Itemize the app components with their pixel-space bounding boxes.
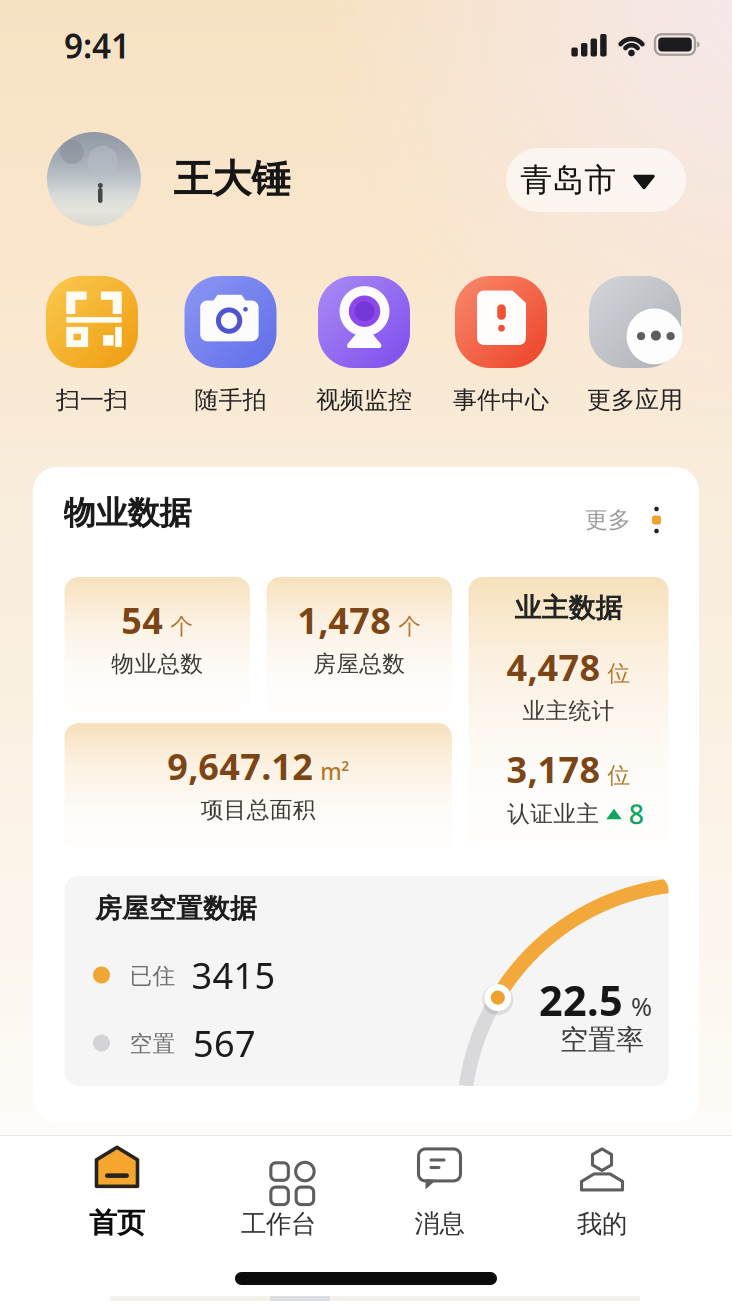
staticText: % xyxy=(631,989,652,1023)
staticText: 9,647.12 xyxy=(167,742,313,790)
staticText: 54 xyxy=(121,596,163,644)
button[interactable]: 首页 xyxy=(42,1144,192,1240)
staticText: 空置率 xyxy=(560,1023,644,1057)
button[interactable]: 视频监控 xyxy=(299,275,429,425)
staticText: 更多 xyxy=(585,506,631,534)
staticText: 1,478 xyxy=(297,596,391,644)
staticText: 我的 xyxy=(577,1208,627,1239)
staticText: 位 xyxy=(607,659,630,687)
staticText: 已住 xyxy=(129,962,175,990)
staticText: 随手拍 xyxy=(194,385,266,415)
button[interactable]: 我的 xyxy=(527,1146,677,1239)
button[interactable]: 工作台 xyxy=(203,1146,353,1239)
staticText: 扫一扫 xyxy=(56,385,128,415)
staticText: 个 xyxy=(170,612,193,640)
staticText: 消息 xyxy=(414,1208,464,1239)
staticText: 王大锤 xyxy=(173,155,290,203)
staticText: 空置 xyxy=(129,1030,175,1058)
staticText: 业主统计 xyxy=(522,697,614,725)
staticText: 房屋空置数据 xyxy=(95,892,257,925)
staticText: 567 xyxy=(193,1019,256,1067)
staticText: 4,478 xyxy=(506,643,600,691)
staticText: 青岛市 xyxy=(520,160,616,200)
staticText: 工作台 xyxy=(241,1208,316,1239)
staticText: 3415 xyxy=(191,951,275,999)
staticText: 物业总数 xyxy=(111,650,203,678)
button[interactable]: 消息 xyxy=(364,1146,514,1239)
staticText: 首页 xyxy=(89,1206,145,1240)
button[interactable]: 随手拍 xyxy=(165,275,295,425)
staticText: 视频监控 xyxy=(316,385,412,415)
button[interactable]: 个人资料 xyxy=(47,132,141,226)
staticText: 个 xyxy=(398,612,421,640)
staticText: m² xyxy=(320,756,349,786)
button[interactable]: 更多 xyxy=(585,506,661,534)
staticText: 认证业主 xyxy=(507,800,599,828)
staticText: 9:41 xyxy=(64,23,130,68)
staticText: 22.5 xyxy=(539,973,623,1027)
staticText: 物业数据 xyxy=(63,493,191,533)
button[interactable]: 扫一扫 xyxy=(27,275,157,425)
staticText: 项目总面积 xyxy=(201,796,316,824)
button[interactable]: 青岛市 xyxy=(506,148,686,212)
button[interactable]: 更多应用 xyxy=(570,275,700,425)
staticText: 事件中心 xyxy=(453,385,549,415)
button[interactable]: 事件中心 xyxy=(436,275,566,425)
staticText: 3,178 xyxy=(506,745,600,793)
staticText: 8 xyxy=(629,796,644,832)
staticText: 更多应用 xyxy=(587,385,683,415)
staticText: 房屋总数 xyxy=(313,650,405,678)
staticText: 业主数据 xyxy=(514,592,622,624)
staticText: 位 xyxy=(607,761,630,789)
